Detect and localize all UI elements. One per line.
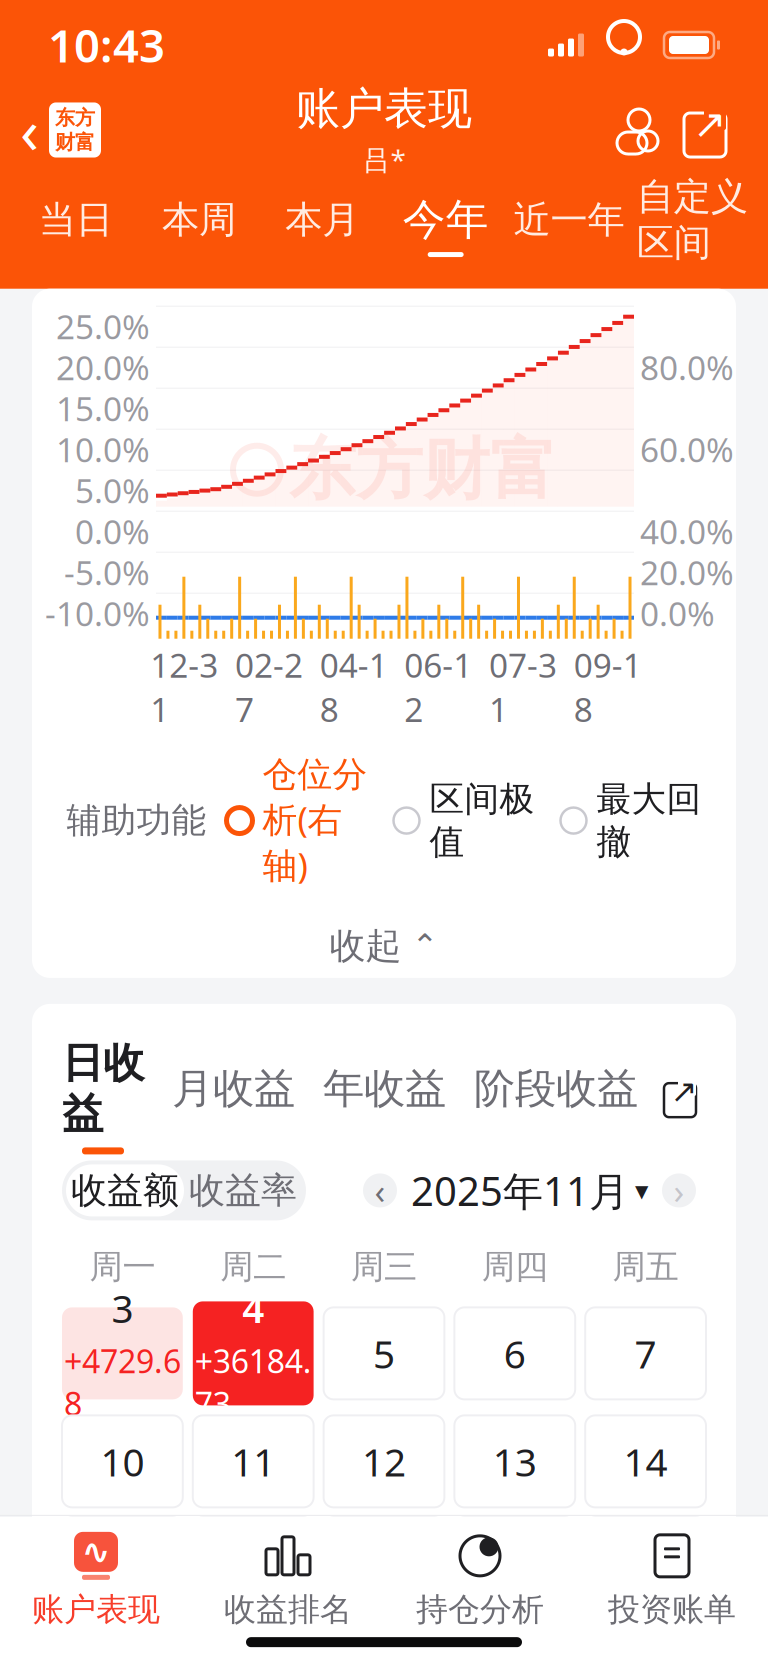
staticText: 4 <box>242 1282 264 1333</box>
button[interactable]: 11 <box>193 1415 314 1507</box>
button[interactable]: 自定义区间 <box>631 170 754 281</box>
button[interactable]: 近一年 <box>507 193 631 258</box>
staticText: 财富 <box>55 130 95 155</box>
staticText: 东方财富 <box>289 429 557 511</box>
button[interactable]: 分享收益 <box>654 1070 706 1122</box>
staticText: 20 <box>493 1538 537 1589</box>
staticText: -5.0% <box>64 550 150 594</box>
staticText: ⌃ <box>411 928 438 964</box>
button[interactable]: 5 <box>324 1307 444 1399</box>
staticText: 今年 <box>403 194 489 246</box>
button[interactable]: 13 <box>454 1415 575 1507</box>
button[interactable]: 27 <box>454 1619 575 1663</box>
staticText: 15.0% <box>56 386 150 430</box>
button[interactable]: 年收益 <box>323 1063 474 1129</box>
button[interactable]: 账户 <box>608 97 670 163</box>
button[interactable]: 分享 <box>670 97 768 163</box>
button[interactable]: 阶段收益 <box>474 1063 638 1129</box>
staticText: 收益额 <box>71 1168 179 1212</box>
staticText: 14 <box>624 1436 668 1487</box>
button[interactable]: 收益排名 <box>192 1532 384 1629</box>
button[interactable]: 持仓分析 <box>384 1532 576 1629</box>
staticText: 6 <box>504 1328 526 1379</box>
staticText: 17 <box>100 1538 144 1589</box>
staticText: 5.0% <box>75 468 150 512</box>
staticText: 5 <box>373 1328 395 1379</box>
staticText: 收益率 <box>189 1168 297 1212</box>
button[interactable]: 返回 东方财富 <box>0 92 121 168</box>
button[interactable]: 25 <box>193 1619 314 1663</box>
staticText: 0.0% <box>75 509 150 553</box>
button[interactable]: 收益额 <box>66 1164 184 1216</box>
staticText: 12 <box>362 1436 406 1487</box>
button[interactable]: 最大回撤 <box>560 778 701 863</box>
staticText: 25 <box>231 1640 275 1663</box>
staticText: 06-12 <box>404 643 472 731</box>
staticText: 18 <box>231 1538 275 1589</box>
staticText: 13 <box>493 1436 537 1487</box>
staticText: 本月 <box>285 197 359 243</box>
button[interactable]: 28 <box>585 1619 706 1663</box>
staticText: 自定义区间 <box>637 174 748 266</box>
button[interactable]: 7 <box>585 1307 706 1399</box>
staticText: ‹ <box>374 1167 385 1213</box>
button[interactable]: 2025年11月 <box>411 1164 648 1217</box>
staticText: 年收益 <box>323 1063 446 1114</box>
staticText: 账户表现 <box>296 82 472 136</box>
button[interactable]: 4 <box>193 1301 314 1405</box>
button[interactable]: 19 <box>324 1517 444 1609</box>
button[interactable]: 本周 <box>137 193 261 258</box>
button[interactable]: 收起 <box>32 914 736 978</box>
button[interactable]: 仓位分析(右轴) <box>226 753 367 888</box>
staticText: -10.0% <box>45 591 150 635</box>
button[interactable]: 24 <box>62 1619 183 1663</box>
button[interactable]: 月收益 <box>172 1063 323 1129</box>
button[interactable]: 12 <box>324 1415 444 1507</box>
staticText: 26 <box>362 1640 406 1663</box>
staticText: 吕* <box>362 141 405 178</box>
staticText: 周三 <box>351 1246 417 1287</box>
button[interactable]: 21 <box>585 1517 706 1609</box>
button[interactable]: ∿ <box>0 1532 192 1629</box>
staticText: 80.0% <box>640 345 734 389</box>
button[interactable]: 本月 <box>261 193 384 258</box>
button[interactable]: 当日 <box>14 193 137 258</box>
button[interactable]: 上个月 <box>363 1173 397 1207</box>
staticText: 本周 <box>162 197 236 243</box>
button[interactable]: 26 <box>324 1619 444 1663</box>
button[interactable]: 今年 <box>384 190 507 261</box>
staticText: 02-27 <box>235 643 303 731</box>
button[interactable]: 收益率 <box>184 1164 302 1216</box>
staticText: › <box>673 1167 684 1213</box>
staticText: 最大回撤 <box>596 778 701 863</box>
button[interactable]: 14 <box>585 1415 706 1507</box>
staticText: +4729.68 <box>64 1340 181 1425</box>
button[interactable]: 18 <box>193 1517 314 1609</box>
button[interactable]: 10 <box>62 1415 183 1507</box>
button[interactable]: 6 <box>454 1307 575 1399</box>
staticText: ↗ <box>693 101 727 147</box>
staticText: 60.0% <box>640 427 734 471</box>
button[interactable]: 区间极值 <box>393 778 534 863</box>
staticText: ▾ <box>635 1175 648 1206</box>
button[interactable]: 日收益 <box>62 1038 172 1154</box>
button[interactable]: 下个月 <box>662 1173 696 1207</box>
staticText: 近一年 <box>513 197 624 243</box>
staticText: 10.0% <box>56 427 150 471</box>
staticText: 周一 <box>89 1246 155 1287</box>
button[interactable]: 投资账单 <box>576 1532 768 1629</box>
staticText: 2025年11月 <box>411 1164 629 1217</box>
button[interactable]: 3 <box>62 1307 183 1399</box>
staticText: 投资账单 <box>608 1590 736 1629</box>
staticText: 40.0% <box>640 509 734 553</box>
staticText: +36184.73 <box>195 1340 312 1425</box>
staticText: 27 <box>493 1640 537 1663</box>
staticText: 仓位分析(右轴) <box>262 753 367 888</box>
staticText: 账户表现 <box>32 1590 160 1629</box>
button[interactable]: 20 <box>454 1517 575 1609</box>
staticText: 25.0% <box>56 304 150 348</box>
staticText: 07-31 <box>489 643 557 731</box>
button[interactable]: 17 <box>62 1517 183 1609</box>
